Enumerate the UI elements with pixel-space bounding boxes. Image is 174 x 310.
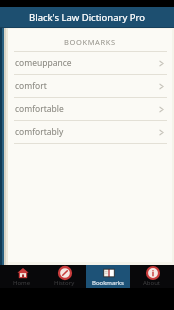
staticText: Home [13, 279, 31, 287]
staticText: Bookmarks [92, 279, 124, 287]
staticText: comfortably [15, 126, 158, 138]
staticText: Black's Law Dictionary Pro [29, 11, 145, 24]
staticText: comfortable [15, 103, 158, 115]
staticText: History [54, 279, 75, 287]
staticText: comeuppance [15, 57, 158, 69]
staticText: About [143, 279, 161, 287]
button[interactable]: History [43, 265, 86, 288]
button[interactable]: Home [0, 265, 43, 288]
button[interactable]: comfort [8, 75, 172, 97]
button[interactable]: About [130, 265, 174, 288]
staticText: comfort [15, 80, 158, 92]
staticText: BOOKMARKS [64, 37, 116, 47]
button[interactable]: comfortable [8, 98, 172, 120]
button[interactable]: comfortably [8, 121, 172, 143]
button[interactable]: Bookmarks [86, 265, 130, 288]
button[interactable]: comeuppance [8, 52, 172, 74]
